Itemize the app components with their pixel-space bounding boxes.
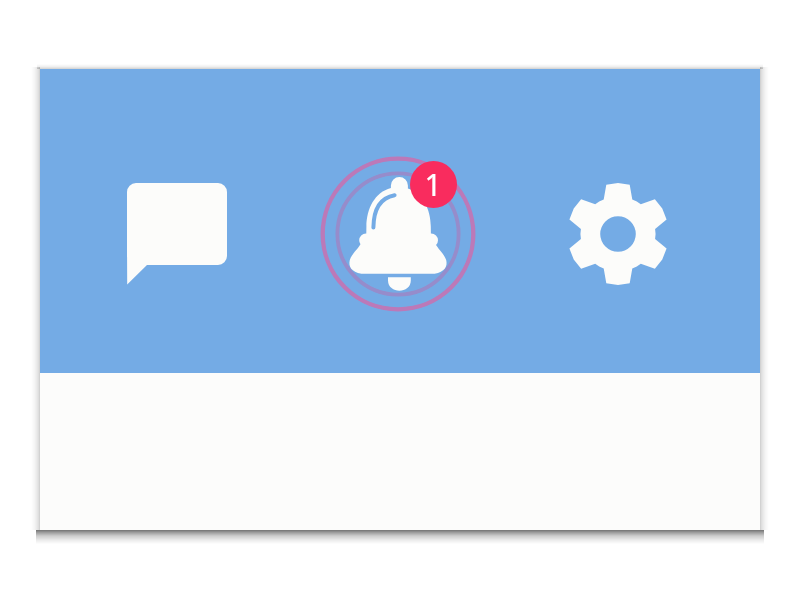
button[interactable]: Notifications xyxy=(318,154,478,314)
button[interactable]: Settings xyxy=(548,164,688,304)
staticText: 1 xyxy=(424,164,442,205)
button[interactable]: Messages xyxy=(107,163,247,303)
